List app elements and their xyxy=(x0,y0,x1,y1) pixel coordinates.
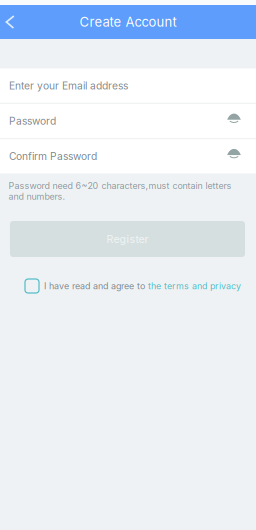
staticText: I have read and agree to xyxy=(44,281,148,291)
staticText: Confirm Password xyxy=(9,150,97,162)
staticText: Password need 6~20 characters,must conta… xyxy=(8,180,231,202)
button[interactable]: Show password xyxy=(221,139,247,173)
button[interactable]: Back xyxy=(0,5,18,39)
staticText: Register xyxy=(106,233,148,245)
button[interactable]: Show password xyxy=(221,104,247,138)
staticText: Create Account xyxy=(79,14,176,30)
staticText: the terms and privacy xyxy=(148,281,241,291)
button[interactable]: I have read and agree to xyxy=(39,281,241,291)
staticText: Enter your Email address xyxy=(9,79,128,92)
staticText: Password xyxy=(9,115,56,127)
button[interactable]: Agree to the terms and privacy xyxy=(25,279,39,293)
